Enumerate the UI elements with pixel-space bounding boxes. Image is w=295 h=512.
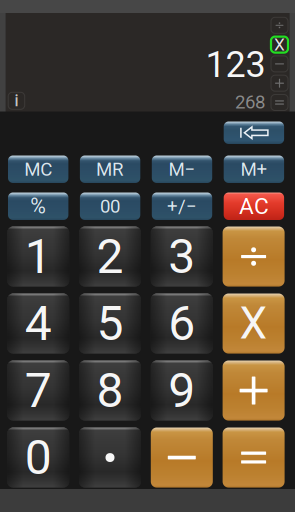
button[interactable]: 8	[79, 360, 141, 421]
button[interactable]: 7	[7, 360, 69, 421]
button[interactable]: 5	[79, 293, 141, 354]
staticText: 4	[25, 295, 52, 352]
staticText: 6	[168, 295, 195, 352]
staticText: 5	[96, 295, 123, 352]
button[interactable]: 2	[79, 226, 141, 287]
button[interactable]: Add	[223, 360, 285, 421]
button[interactable]: Multiply mode	[271, 37, 288, 53]
staticText: AC	[239, 193, 269, 220]
staticText: 123	[205, 44, 265, 86]
staticText: M−	[168, 158, 195, 180]
button[interactable]: Subtract	[151, 427, 213, 488]
button[interactable]: 9	[151, 360, 213, 421]
staticText: 00	[100, 195, 120, 217]
staticText: 7	[25, 362, 52, 419]
button[interactable]: 3	[151, 226, 213, 287]
button[interactable]: Equals	[223, 427, 285, 488]
staticText: X	[274, 34, 285, 55]
staticText: X	[240, 298, 268, 349]
button[interactable]: MR	[80, 155, 140, 183]
button[interactable]: Backspace	[224, 121, 284, 144]
staticText: 9	[168, 362, 195, 419]
button[interactable]: MC	[8, 155, 68, 183]
staticText: %	[30, 194, 46, 219]
staticText: MR	[96, 158, 124, 180]
button[interactable]: M−	[152, 155, 212, 183]
button[interactable]: 4	[7, 293, 69, 354]
button[interactable]: %	[8, 192, 68, 220]
staticText: i	[14, 91, 18, 110]
button[interactable]: 0	[7, 427, 69, 488]
staticText: 268	[235, 91, 265, 113]
staticText: 2	[96, 228, 123, 285]
button[interactable]: Subtract mode	[271, 56, 288, 72]
staticText: 3	[168, 228, 195, 285]
button[interactable]: +/−	[152, 192, 212, 220]
button[interactable]: AC	[224, 192, 284, 220]
button[interactable]: Info	[8, 92, 25, 109]
button[interactable]: Multiply	[223, 293, 285, 354]
button[interactable]: 6	[151, 293, 213, 354]
button[interactable]: Add mode	[271, 75, 288, 91]
button[interactable]: 00	[80, 192, 140, 220]
button[interactable]: Decimal point	[79, 427, 141, 488]
button[interactable]: M+	[224, 155, 284, 183]
button[interactable]: Equals mode	[271, 94, 288, 110]
staticText: 1	[25, 228, 52, 285]
staticText: MC	[24, 158, 52, 180]
staticText: 8	[96, 362, 123, 419]
staticText: M+	[240, 158, 267, 180]
staticText: +/−	[167, 195, 197, 217]
button[interactable]: Divide mode	[271, 17, 288, 33]
staticText: 0	[25, 429, 52, 486]
button[interactable]: Divide	[223, 226, 285, 287]
button[interactable]: 1	[7, 226, 69, 287]
